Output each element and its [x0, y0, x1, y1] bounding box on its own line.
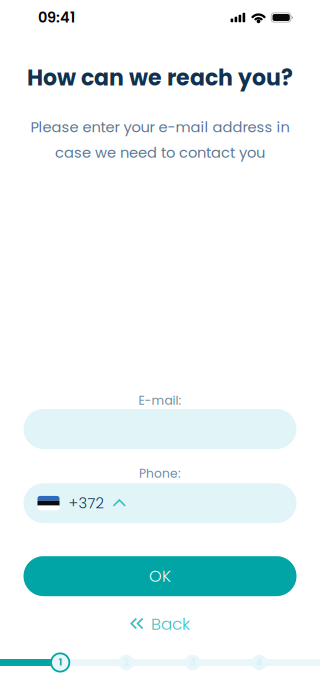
button[interactable]: Back	[120, 607, 200, 640]
staticText: case we need to contact you	[55, 142, 265, 163]
staticText: Back	[151, 612, 190, 635]
staticText: 09:41	[38, 7, 75, 28]
staticText: +372	[68, 493, 103, 513]
button[interactable]: +372	[23, 483, 296, 523]
staticText: 3	[190, 656, 195, 669]
staticText: OK	[149, 565, 171, 587]
staticText: Please enter your e-mail address in	[30, 117, 289, 137]
staticText: Phone:	[139, 465, 181, 482]
staticText: 2	[124, 656, 129, 669]
button[interactable]: OK	[23, 556, 296, 596]
staticText: E-mail:	[138, 392, 181, 409]
staticText: 4	[256, 656, 262, 669]
staticText: How can we reach you?	[27, 62, 293, 93]
staticText: 1	[59, 656, 62, 669]
